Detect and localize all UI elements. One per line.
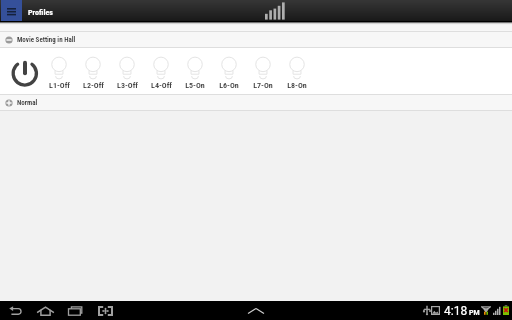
staticText: L8-On [287,81,307,90]
staticText: Normal [17,99,38,107]
staticText: Profiles [28,8,53,17]
button[interactable]: Expand status bar [243,301,269,320]
button[interactable]: L3-Off [110,48,144,94]
button[interactable]: L2-Off [76,48,110,94]
button[interactable]: L4-Off [144,48,178,94]
staticText: PM [469,309,480,317]
button[interactable]: Movie Setting in Hall [0,32,512,47]
staticText: L6-On [219,81,239,90]
button[interactable]: Screenshot [90,301,120,320]
button[interactable]: Recent apps [60,301,90,320]
other: Signal strength [265,0,286,21]
staticText: 4:18 [444,304,468,318]
button[interactable]: L7-On [246,48,280,94]
staticText: L4-Off [151,81,172,90]
button[interactable]: Navigation menu [1,0,22,21]
staticText: L2-Off [83,81,104,90]
button[interactable]: L5-On [178,48,212,94]
button[interactable]: Home [30,301,60,320]
button[interactable]: L6-On [212,48,246,94]
staticText: L7-On [253,81,273,90]
button[interactable]: Normal [0,95,512,110]
button[interactable]: L1-Off [42,48,76,94]
button[interactable]: Power [9,58,40,89]
staticText: L1-Off [49,81,70,90]
staticText: L5-On [185,81,205,90]
button[interactable]: L8-On [280,48,314,94]
button[interactable]: Back [1,301,30,320]
staticText: L3-Off [117,81,138,90]
staticText: Movie Setting in Hall [17,36,76,44]
